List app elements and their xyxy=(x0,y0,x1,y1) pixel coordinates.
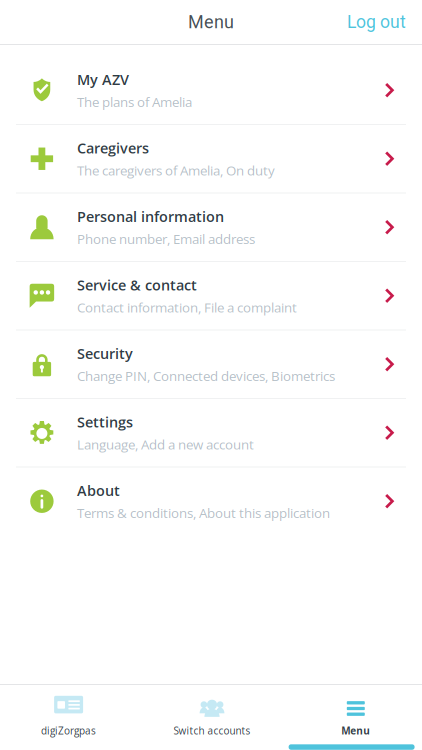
staticText: Menu xyxy=(341,724,370,737)
staticText: Security xyxy=(77,344,133,363)
staticText: Personal information xyxy=(77,207,224,226)
button[interactable]: Security xyxy=(0,330,422,398)
button[interactable]: Caregivers xyxy=(0,125,422,192)
staticText: Change PIN, Connected devices, Biometric… xyxy=(77,367,335,385)
button[interactable]: Settings xyxy=(0,399,422,466)
staticText: Language, Add a new account xyxy=(77,435,254,453)
staticText: Contact information, File a complaint xyxy=(77,298,297,316)
staticText: Menu xyxy=(188,11,234,33)
staticText: The plans of Amelia xyxy=(77,93,192,111)
button[interactable]: About xyxy=(0,467,422,535)
button[interactable]: My AZV xyxy=(0,56,422,124)
button[interactable]: Log out xyxy=(347,12,422,32)
staticText: Phone number, Email address xyxy=(77,230,255,248)
staticText: digiZorgpas xyxy=(41,724,96,737)
staticText: The caregivers of Amelia, On duty xyxy=(77,161,275,179)
staticText: Log out xyxy=(347,12,406,32)
staticText: Terms & conditions, About this applicati… xyxy=(77,504,330,522)
button[interactable]: Service & contact xyxy=(0,262,422,329)
button[interactable]: Menu xyxy=(286,685,422,749)
button[interactable]: Personal information xyxy=(0,193,422,261)
staticText: Caregivers xyxy=(77,138,149,158)
staticText: My AZV xyxy=(77,70,129,89)
staticText: About xyxy=(77,481,120,500)
button[interactable]: digiZorgpas xyxy=(0,685,139,749)
staticText: Settings xyxy=(77,412,133,432)
staticText: Switch accounts xyxy=(173,724,250,737)
staticText: Service & contact xyxy=(77,275,197,295)
button[interactable]: Switch accounts xyxy=(142,685,282,749)
